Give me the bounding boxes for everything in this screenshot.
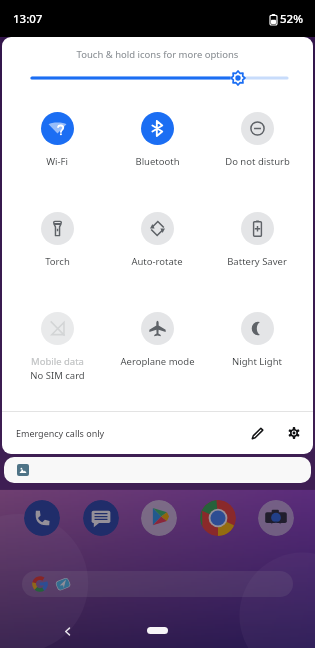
- button[interactable]: Auto-rotate: [107, 212, 207, 268]
- staticText: 13:07: [13, 11, 43, 27]
- button[interactable]: [4, 457, 311, 483]
- button[interactable]: Messages: [83, 500, 119, 536]
- button[interactable]: Wi-Fi: [7, 112, 107, 168]
- staticText: Battery Saver: [227, 255, 287, 268]
- staticText: Wi-Fi: [46, 155, 68, 168]
- staticText: Do not disturb: [225, 155, 290, 168]
- button[interactable]: Do not disturb: [207, 112, 307, 168]
- button[interactable]: Mobile data: [7, 312, 107, 382]
- staticText: Touch & hold icons for more options: [2, 48, 313, 61]
- button[interactable]: Search: [22, 571, 293, 597]
- button[interactable]: Battery Saver: [207, 212, 307, 268]
- button[interactable]: Home: [147, 627, 168, 634]
- button[interactable]: Edit tiles: [244, 419, 272, 447]
- staticText: Torch: [45, 255, 70, 268]
- button[interactable]: Chrome: [200, 500, 236, 536]
- staticText: Aeroplane mode: [120, 355, 195, 368]
- button[interactable]: Aeroplane mode: [107, 312, 207, 368]
- button[interactable]: Play Store: [141, 500, 177, 536]
- staticText: Auto-rotate: [131, 255, 183, 268]
- button[interactable]: Camera: [258, 500, 294, 536]
- button[interactable]: Settings: [280, 419, 308, 447]
- button[interactable]: Back: [56, 620, 78, 642]
- staticText: 52%: [280, 11, 303, 27]
- staticText: Night Light: [232, 355, 282, 368]
- button[interactable]: Bluetooth: [107, 112, 207, 168]
- button[interactable]: Phone: [24, 500, 60, 536]
- staticText: Mobile data: [31, 355, 84, 368]
- staticText: Emergency calls only: [16, 427, 105, 439]
- button[interactable]: Night Light: [207, 312, 307, 368]
- staticText: Bluetooth: [135, 155, 180, 168]
- staticText: No SIM card: [30, 369, 85, 382]
- button[interactable]: Torch: [7, 212, 107, 268]
